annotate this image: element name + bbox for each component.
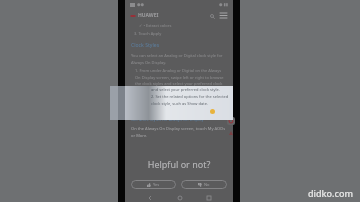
staticText: Get More Styles for Always On Display bbox=[131, 117, 204, 122]
staticText: You can select an Analog or Digital cloc… bbox=[131, 53, 227, 65]
button[interactable]: Top bbox=[227, 129, 235, 137]
staticText: ● ▮▮ bbox=[219, 2, 228, 7]
button[interactable]: Home bbox=[175, 193, 184, 202]
staticText: and select your preferred clock style. bbox=[151, 87, 220, 92]
staticText: No bbox=[204, 182, 210, 187]
button[interactable]: No bbox=[181, 180, 227, 189]
staticText: 1. From under Analog or Digital on the A… bbox=[135, 68, 227, 92]
button[interactable]: Recents bbox=[204, 193, 213, 202]
staticText: Yes bbox=[153, 182, 160, 187]
staticText: didko.com bbox=[308, 187, 354, 199]
button[interactable]: Yes bbox=[131, 180, 176, 189]
staticText: HUAWEI bbox=[138, 12, 159, 19]
staticText: 3. Touch Apply. bbox=[134, 106, 163, 111]
staticText: 2. Set the related options for the selec… bbox=[151, 94, 230, 106]
staticText: Clock Styles bbox=[131, 42, 160, 49]
staticText: 3. Touch Apply bbox=[134, 31, 162, 36]
staticText: ✓ • Extract colors bbox=[139, 23, 172, 28]
staticText: ●● bbox=[137, 2, 144, 7]
staticText: 2. Set the related options for the selec… bbox=[135, 92, 227, 104]
button[interactable]: Feedback bbox=[227, 117, 235, 125]
button[interactable]: Menu bbox=[219, 11, 228, 20]
staticText: Helpful or not? bbox=[125, 158, 233, 170]
button[interactable]: Search bbox=[208, 12, 216, 20]
staticText: On the Always On Display screen, touch M… bbox=[131, 126, 227, 138]
button[interactable]: Back bbox=[145, 193, 154, 202]
